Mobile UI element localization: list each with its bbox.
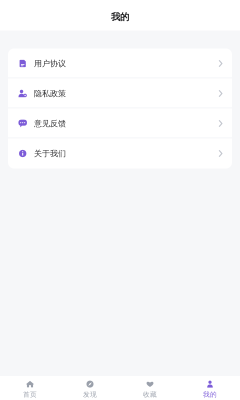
button[interactable]: 收藏 [120, 380, 180, 399]
staticText: 发现 [83, 390, 97, 399]
button[interactable]: 用户协议 [8, 48, 232, 78]
button[interactable]: 发现 [60, 380, 120, 399]
staticText: 我的 [111, 11, 129, 23]
staticText: 意见反馈 [34, 119, 66, 128]
staticText: 首页 [23, 390, 37, 399]
button[interactable]: 隐私政策 [8, 78, 232, 108]
button[interactable]: 关于我们 [8, 138, 232, 168]
staticText: 收藏 [143, 390, 157, 399]
staticText: 我的 [203, 390, 217, 399]
staticText: 用户协议 [34, 59, 66, 68]
button[interactable]: 意见反馈 [8, 108, 232, 138]
staticText: 隐私政策 [34, 89, 66, 98]
button[interactable]: 首页 [0, 380, 60, 399]
button[interactable]: 我的 [180, 380, 240, 399]
staticText: 关于我们 [34, 149, 66, 158]
